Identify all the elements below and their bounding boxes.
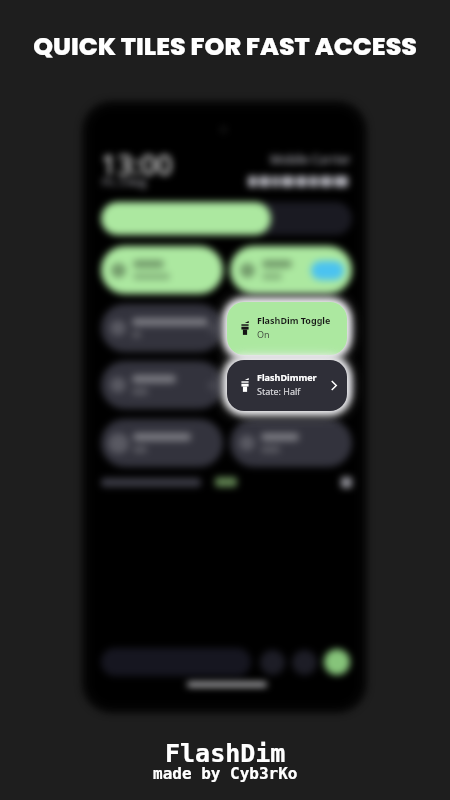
button[interactable]: Quick setting tile	[230, 419, 352, 467]
staticText: 13:00	[101, 145, 173, 183]
staticText: QUICK TILES FOR FAST ACCESS	[33, 29, 417, 64]
button[interactable]: Quick setting tile	[101, 419, 223, 467]
button[interactable]: App	[260, 650, 285, 675]
staticText: FlashDim	[165, 739, 286, 768]
button[interactable]: Brightness	[101, 202, 352, 235]
button[interactable]: Quick setting tile	[101, 246, 223, 294]
button[interactable]: FlashDim	[324, 649, 350, 675]
button[interactable]: FlashDimmer	[227, 360, 347, 411]
button[interactable]: FlashDim Toggle	[227, 302, 347, 355]
staticText: Mobile Carrier	[270, 151, 351, 167]
button[interactable]: App	[292, 650, 317, 675]
staticText: FlashDimmer	[257, 371, 317, 383]
button[interactable]: Quick setting tile	[101, 361, 223, 409]
staticText: FlashDim Toggle	[257, 314, 331, 326]
staticText: State: Half	[257, 385, 301, 397]
button[interactable]: Quick setting tile	[101, 304, 223, 352]
button[interactable]: Quick setting tile	[230, 361, 352, 409]
button[interactable]: Search	[101, 648, 251, 676]
staticText: made by Cyb3rKo	[153, 764, 298, 783]
staticText: On	[257, 328, 270, 340]
button[interactable]: Quick setting tile	[230, 304, 352, 352]
button[interactable]: Quick setting tile	[230, 246, 352, 294]
button[interactable]: Edit tiles	[341, 477, 352, 488]
staticText: Fri, 3 Aug	[102, 175, 147, 189]
